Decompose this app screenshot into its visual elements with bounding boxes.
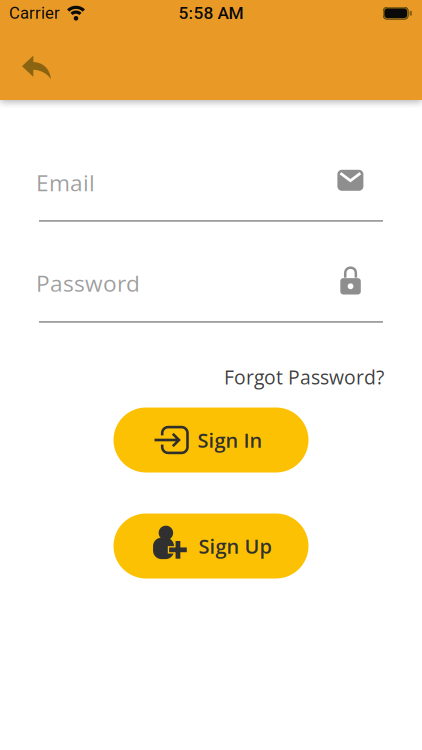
staticText: Sign Up	[198, 532, 271, 560]
button[interactable]: Password	[37, 267, 383, 323]
button[interactable]: Sign Up	[113, 513, 308, 578]
button[interactable]: Back	[20, 51, 52, 77]
button[interactable]: Email	[37, 167, 383, 222]
staticText: Sign In	[197, 426, 262, 454]
staticText: Forgot Password?	[224, 364, 384, 390]
staticText: Password	[36, 268, 140, 298]
staticText: 5:58 AM	[178, 3, 243, 23]
button[interactable]: Sign In	[113, 407, 308, 472]
staticText: Carrier	[9, 3, 60, 23]
button[interactable]: Forgot Password?	[224, 364, 384, 390]
staticText: Email	[36, 167, 95, 198]
